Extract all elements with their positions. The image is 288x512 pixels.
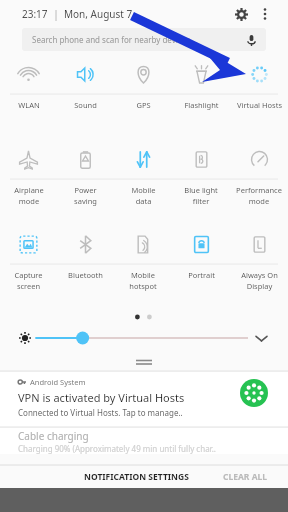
- staticText: VPN is activated by Virtual Hosts: [18, 390, 185, 405]
- staticText: Cable charging: [18, 429, 89, 443]
- staticText: Performance mode: [236, 185, 282, 206]
- button[interactable]: Mobile hotspot: [114, 225, 172, 263]
- staticText: WLAN: [18, 100, 40, 110]
- button[interactable]: Mobile data: [114, 140, 172, 178]
- staticText: Mobile hotspot: [129, 270, 157, 291]
- staticText: Airplane mode: [14, 185, 44, 206]
- button[interactable]: Search phone and scan for nearby devices: [22, 28, 266, 51]
- button[interactable]: Performance mode: [230, 140, 288, 178]
- button[interactable]: Always On Display: [230, 225, 288, 263]
- button[interactable]: Bluetooth: [57, 225, 114, 263]
- staticText: Bluetooth: [68, 270, 103, 280]
- button[interactable]: Blue light filter: [172, 140, 230, 178]
- button[interactable]: WLAN: [0, 55, 57, 93]
- staticText: Virtual Hosts: [237, 100, 282, 110]
- button[interactable]: [36, 326, 248, 350]
- staticText: Connected to Virtual Hosts. Tap to manag…: [18, 407, 183, 418]
- staticText: Flashlight: [184, 100, 219, 110]
- button[interactable]: Sound: [57, 55, 114, 93]
- staticText: Android System: [30, 377, 86, 387]
- button[interactable]: NOTIFICATION SETTINGS: [78, 468, 195, 486]
- staticText: Power saving: [74, 185, 97, 206]
- button[interactable]: GPS: [114, 55, 172, 93]
- staticText: Sound: [74, 100, 97, 110]
- staticText: Portrait: [188, 270, 215, 280]
- other: Brightness: [14, 327, 36, 349]
- button[interactable]: Cable charging: [0, 428, 288, 454]
- other: Voice search: [244, 33, 258, 47]
- button[interactable]: Airplane mode: [0, 140, 57, 178]
- button[interactable]: Virtual Hosts: [230, 55, 288, 93]
- staticText: Capture screen: [14, 270, 43, 291]
- button[interactable]: Expand: [248, 325, 274, 351]
- staticText: Mobile data: [131, 185, 156, 206]
- staticText: Always On Display: [241, 270, 278, 291]
- staticText: GPS: [136, 100, 151, 110]
- staticText: Mon, August 7: [64, 7, 133, 21]
- button[interactable]: CLEAR ALL: [217, 468, 274, 486]
- button[interactable]: More options: [254, 3, 276, 25]
- staticText: Search phone and scan for nearby devices: [32, 34, 190, 45]
- button[interactable]: Settings: [228, 1, 254, 27]
- staticText: 23:17: [22, 7, 48, 21]
- button[interactable]: Flashlight: [172, 55, 230, 93]
- button[interactable]: Android System: [0, 372, 288, 427]
- staticText: NOTIFICATION SETTINGS: [84, 471, 189, 483]
- button[interactable]: Portrait: [172, 225, 230, 263]
- staticText: |: [48, 7, 64, 21]
- staticText: CLEAR ALL: [223, 471, 268, 483]
- staticText: Charging 90% (Approximately 49 min until…: [18, 443, 216, 454]
- button[interactable]: Capture screen: [0, 225, 57, 263]
- button[interactable]: Power saving: [57, 140, 114, 178]
- staticText: Blue light filter: [184, 185, 218, 206]
